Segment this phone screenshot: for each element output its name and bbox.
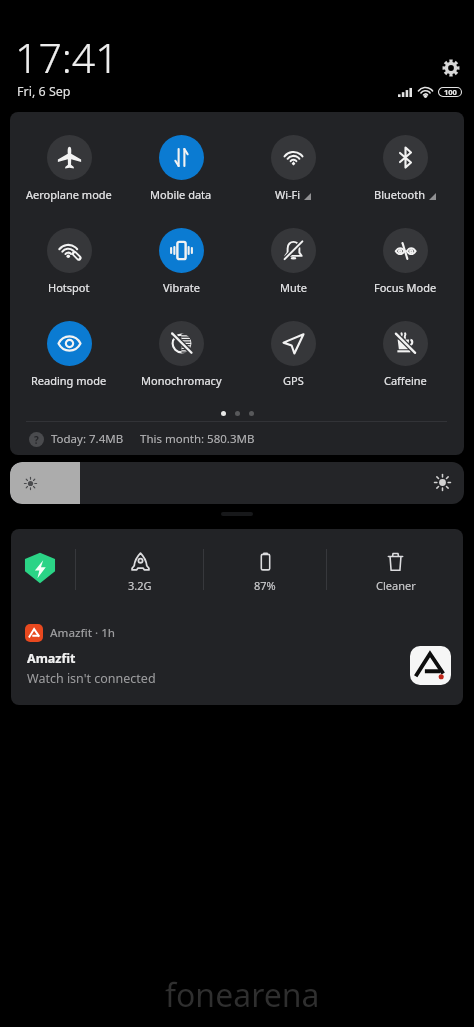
staticText: Today: 7.4MB xyxy=(51,431,124,447)
button[interactable]: Amazfit · 1h xyxy=(11,624,463,687)
staticText: Amazfit xyxy=(27,650,76,667)
staticText: Focus Mode xyxy=(374,280,437,295)
button[interactable]: Brightness xyxy=(10,462,464,504)
button[interactable]: Bluetooth xyxy=(349,135,461,202)
staticText: Aeroplane mode xyxy=(26,187,112,202)
staticText: Bluetooth xyxy=(374,187,426,202)
button[interactable]: Cleaner xyxy=(327,529,463,605)
button[interactable]: Reading mode xyxy=(13,321,125,388)
staticText: ? xyxy=(34,433,39,447)
staticText: This month: 580.3MB xyxy=(140,431,255,447)
button[interactable]: Settings xyxy=(438,55,464,81)
button[interactable]: ? xyxy=(10,423,464,455)
staticText: GPS xyxy=(283,373,304,388)
button[interactable]: Amazfit app xyxy=(410,646,451,685)
staticText: Hotspot xyxy=(48,280,90,295)
button[interactable]: 87% xyxy=(204,529,326,605)
staticText: Wi-Fi xyxy=(275,187,301,202)
button[interactable]: Wi-Fi xyxy=(237,135,349,202)
button[interactable]: Monochromacy xyxy=(125,321,237,388)
button[interactable]: Security scan xyxy=(11,529,71,605)
staticText: Fri, 6 Sep xyxy=(17,83,71,100)
staticText: Caffeine xyxy=(384,373,427,388)
staticText: Vibrate xyxy=(163,280,200,295)
button[interactable]: Focus Mode xyxy=(349,228,461,295)
staticText: Mute xyxy=(280,280,307,295)
button[interactable]: Mute xyxy=(237,228,349,295)
staticText: fonearena xyxy=(165,973,320,1017)
staticText: Watch isn't connected xyxy=(27,670,156,687)
button[interactable]: 3.2G xyxy=(76,529,204,605)
staticText: Monochromacy xyxy=(141,373,222,388)
button[interactable]: Vibrate xyxy=(125,228,237,295)
staticText: Mobile data xyxy=(150,187,212,202)
staticText: 100 xyxy=(444,87,457,97)
staticText: Reading mode xyxy=(31,373,107,388)
staticText: Cleaner xyxy=(376,578,416,593)
staticText: 3.2G xyxy=(128,578,152,593)
staticText: 17:41 xyxy=(15,29,119,85)
button[interactable]: Hotspot xyxy=(13,228,125,295)
button[interactable]: GPS xyxy=(237,321,349,388)
button[interactable]: Aeroplane mode xyxy=(13,135,125,202)
button[interactable]: Mobile data xyxy=(125,135,237,202)
staticText: Amazfit · 1h xyxy=(50,625,115,641)
staticText: 87% xyxy=(254,578,276,593)
button[interactable]: Caffeine xyxy=(349,321,461,388)
